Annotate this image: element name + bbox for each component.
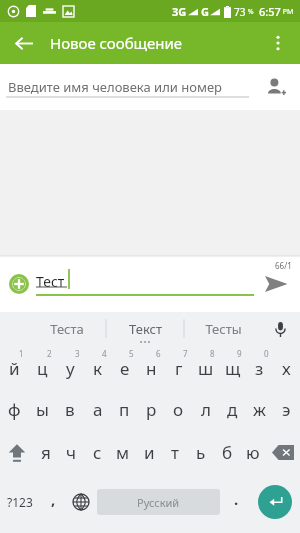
staticText: Текст — [129, 320, 162, 338]
staticText: д — [227, 398, 238, 421]
staticText: э — [282, 398, 291, 421]
button[interactable]: Change language — [67, 475, 95, 528]
button[interactable]: о — [165, 388, 192, 430]
staticText: е — [120, 357, 130, 380]
staticText: , — [51, 489, 56, 509]
button[interactable]: э — [273, 388, 300, 430]
staticText: п — [119, 398, 130, 421]
staticText: ь — [196, 441, 206, 464]
button[interactable]: у — [56, 345, 84, 388]
staticText: щ — [225, 357, 241, 380]
staticText: и — [144, 441, 155, 464]
button[interactable]: р — [138, 388, 165, 430]
button[interactable]: ь — [188, 430, 214, 475]
button[interactable]: п — [111, 388, 138, 430]
staticText: ц — [37, 357, 48, 380]
staticText: о — [173, 398, 184, 421]
staticText: ф — [8, 398, 21, 421]
button[interactable]: г — [165, 345, 192, 388]
button[interactable]: н — [138, 345, 165, 388]
button[interactable]: Delete — [266, 430, 300, 475]
button[interactable]: е — [111, 345, 138, 388]
staticText: 66/1 — [275, 260, 292, 271]
staticText: ж — [253, 398, 266, 421]
staticText: % — [246, 7, 254, 17]
staticText: р — [146, 398, 157, 421]
button[interactable]: Русский — [97, 489, 220, 515]
button[interactable]: х — [273, 345, 300, 388]
staticText: Тест — [36, 272, 65, 291]
button[interactable]: Back — [8, 27, 40, 59]
button[interactable]: я — [33, 430, 58, 475]
button[interactable]: л — [192, 388, 219, 430]
button[interactable]: Введите имя человека или номер — [0, 64, 300, 110]
staticText: ю — [246, 441, 260, 464]
button[interactable]: ф — [0, 388, 28, 430]
button[interactable]: и — [136, 430, 162, 475]
staticText: т — [171, 441, 179, 464]
staticText: б — [222, 441, 233, 464]
button[interactable]: т — [162, 430, 188, 475]
button[interactable]: ?123 — [0, 475, 40, 528]
staticText: Русский — [137, 495, 180, 510]
staticText: 73 — [234, 5, 246, 19]
staticText: 0 — [264, 348, 269, 359]
staticText: . — [234, 489, 239, 509]
button[interactable]: щ — [219, 345, 246, 388]
button[interactable]: Тесты — [184, 312, 262, 345]
staticText: с — [93, 441, 102, 464]
staticText: н — [146, 357, 157, 380]
staticText: ш — [198, 357, 214, 380]
button[interactable]: More options — [262, 27, 294, 59]
button[interactable]: ч — [58, 430, 84, 475]
staticText: у — [66, 357, 75, 380]
button[interactable]: Enter — [250, 475, 300, 528]
staticText: 6:57 — [259, 4, 281, 19]
button[interactable]: в — [56, 388, 84, 430]
button[interactable]: а — [84, 388, 111, 430]
button[interactable]: Shift — [0, 430, 33, 475]
button[interactable]: Add attachment — [4, 269, 34, 299]
button[interactable]: ы — [28, 388, 56, 430]
staticText: ч — [66, 441, 77, 464]
staticText: м — [116, 441, 130, 464]
staticText: 3 — [75, 348, 80, 359]
staticText: 2 — [47, 348, 52, 359]
button[interactable]: д — [219, 388, 246, 430]
staticText: 6 — [156, 348, 161, 359]
staticText: 9 — [237, 348, 242, 359]
staticText: 1 — [19, 348, 24, 359]
staticText: а — [93, 398, 103, 421]
staticText: л — [201, 398, 211, 421]
button[interactable]: з — [246, 345, 273, 388]
staticText: з — [255, 357, 264, 380]
staticText: 5 — [129, 348, 134, 359]
button[interactable]: с — [84, 430, 110, 475]
button[interactable]: б — [214, 430, 240, 475]
button[interactable]: й — [0, 345, 28, 388]
button[interactable]: Voice input — [266, 315, 294, 343]
staticText: Введите имя человека или номер — [8, 78, 223, 96]
button[interactable]: Теста — [28, 312, 106, 345]
button[interactable]: Send — [258, 266, 294, 302]
staticText: 4 — [102, 348, 107, 359]
staticText: в — [65, 398, 75, 421]
staticText: ?123 — [7, 494, 33, 510]
button[interactable]: ц — [28, 345, 56, 388]
staticText: г — [175, 357, 183, 380]
button[interactable]: Текст — [106, 312, 184, 345]
staticText: ы — [36, 398, 49, 421]
button[interactable]: ю — [240, 430, 266, 475]
staticText: Новое сообщение — [50, 33, 183, 53]
button[interactable]: . — [222, 475, 250, 528]
staticText: PM — [281, 7, 294, 17]
button[interactable]: к — [84, 345, 111, 388]
staticText: G — [201, 4, 209, 19]
staticText: х — [282, 357, 291, 380]
button[interactable]: м — [110, 430, 136, 475]
button[interactable]: , — [40, 475, 67, 528]
button[interactable]: ш — [192, 345, 219, 388]
staticText: 3G — [172, 4, 187, 19]
button[interactable]: Add contact — [260, 71, 292, 103]
button[interactable]: ж — [246, 388, 273, 430]
